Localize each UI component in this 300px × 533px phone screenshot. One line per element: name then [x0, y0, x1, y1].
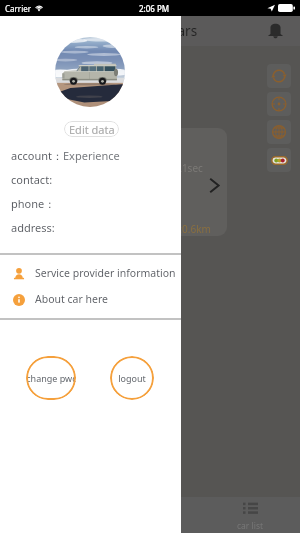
staticText: h21sec — [170, 161, 203, 175]
button[interactable]: h21sec — [108, 128, 227, 236]
staticText: car list — [237, 520, 264, 532]
staticText: address: — [11, 220, 55, 235]
staticText: my cars — [148, 22, 198, 40]
button[interactable]: Edit data — [64, 121, 119, 137]
staticText: Carrier — [5, 3, 32, 14]
staticText: About car here — [35, 292, 108, 306]
staticText: change pwd — [26, 372, 76, 384]
staticText: Service provider information — [35, 266, 176, 280]
button[interactable]: Refresh — [267, 64, 291, 88]
staticText: ce:0.6km — [169, 222, 211, 236]
staticText: Edit data — [69, 122, 115, 137]
staticText: Experience — [63, 148, 120, 163]
staticText: logout — [118, 372, 146, 384]
staticText: contact: — [11, 172, 53, 187]
button[interactable]: About car here — [0, 288, 181, 310]
staticText: phone： — [11, 196, 56, 211]
button[interactable]: Vehicle status — [267, 148, 291, 172]
staticText: 2:06 PM — [139, 3, 170, 14]
button[interactable]: Locate me — [267, 92, 291, 116]
button[interactable]: Notifications — [264, 18, 287, 41]
button[interactable]: logout — [110, 356, 154, 400]
button[interactable]: Profile photo — [55, 37, 125, 107]
staticText: account： — [11, 148, 63, 163]
button[interactable]: Map mode — [267, 120, 291, 144]
button[interactable]: Service provider information — [0, 262, 181, 284]
button[interactable]: car list — [225, 497, 275, 533]
button[interactable]: change pwd — [26, 356, 76, 400]
